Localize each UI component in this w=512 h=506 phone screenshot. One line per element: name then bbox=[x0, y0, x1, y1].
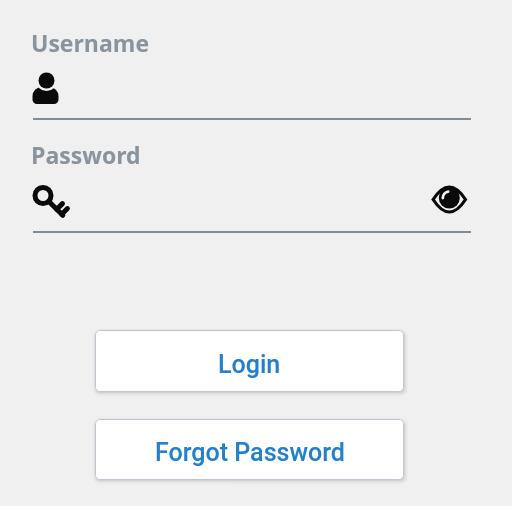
button[interactable] bbox=[28, 68, 64, 108]
staticText: Username bbox=[31, 27, 150, 58]
staticText: Password bbox=[31, 139, 141, 170]
staticText: Forgot Password bbox=[155, 438, 345, 467]
staticText: Login bbox=[218, 350, 281, 379]
button[interactable]: Login bbox=[95, 330, 404, 392]
button[interactable] bbox=[428, 180, 472, 220]
button[interactable] bbox=[26, 180, 70, 224]
button[interactable]: Forgot Password bbox=[95, 419, 404, 480]
